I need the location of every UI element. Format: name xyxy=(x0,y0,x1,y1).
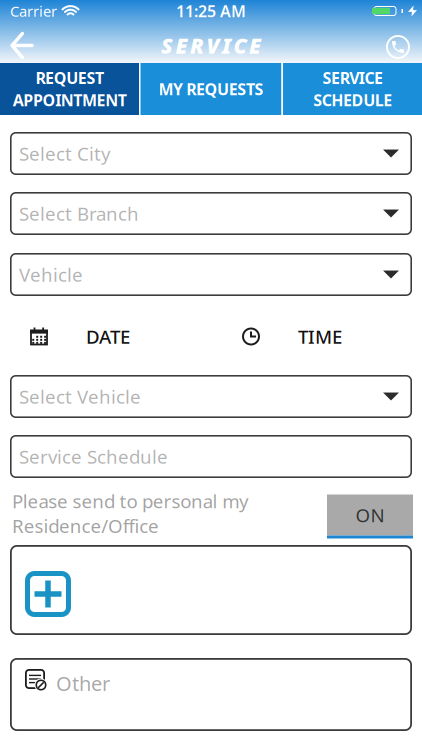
staticText: Please send to personal my Residence/Off… xyxy=(12,488,249,538)
button[interactable]: TIME xyxy=(242,324,342,349)
staticText: 11:25 AM xyxy=(176,0,246,22)
button[interactable]: Select Branch xyxy=(10,192,412,235)
button[interactable]: ON xyxy=(327,487,413,538)
staticText: REQUEST APPOINTMENT xyxy=(12,67,126,111)
button[interactable]: REQUEST APPOINTMENT xyxy=(0,63,139,115)
staticText: MY REQUESTS xyxy=(158,78,263,100)
staticText: Select City xyxy=(19,141,111,166)
staticText: Service Schedule xyxy=(19,444,168,469)
staticText: Select Vehicle xyxy=(19,384,141,409)
button[interactable]: MY REQUESTS xyxy=(140,63,281,115)
button[interactable]: Call xyxy=(386,26,422,59)
staticText: SERVICE SCHEDULE xyxy=(313,67,392,111)
staticText: SERVICE xyxy=(161,31,261,60)
button[interactable]: Add Photo xyxy=(10,545,412,635)
staticText: DATE xyxy=(86,324,130,349)
button[interactable]: DATE xyxy=(30,324,130,349)
staticText: Vehicle xyxy=(19,262,83,287)
button[interactable]: Service Schedule xyxy=(10,435,412,478)
button[interactable]: SERVICE SCHEDULE xyxy=(283,63,422,115)
staticText: Carrier xyxy=(10,1,57,21)
button[interactable]: Vehicle xyxy=(10,253,412,296)
staticText: TIME xyxy=(298,324,342,349)
staticText: Select Branch xyxy=(19,201,139,226)
staticText: ON xyxy=(355,503,384,527)
button[interactable]: Other xyxy=(10,658,412,731)
staticText: Other xyxy=(56,670,110,697)
button[interactable]: Back xyxy=(0,27,32,57)
button[interactable]: Select City xyxy=(10,132,412,175)
button[interactable]: Select Vehicle xyxy=(10,375,412,418)
